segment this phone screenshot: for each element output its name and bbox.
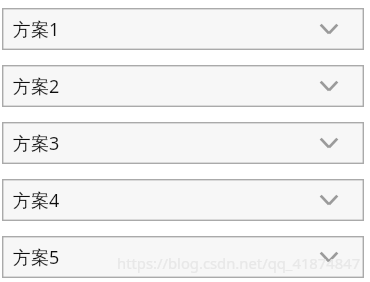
- button[interactable]: 方案4: [2, 179, 364, 221]
- staticText: 方案1: [13, 17, 60, 42]
- button[interactable]: 方案2: [2, 65, 364, 107]
- button[interactable]: 方案5: [2, 236, 364, 278]
- button[interactable]: Expand 方案3: [314, 128, 344, 158]
- staticText: 方案3: [13, 131, 60, 156]
- staticText: 方案2: [13, 74, 60, 99]
- button[interactable]: Expand 方案1: [314, 14, 344, 44]
- staticText: https://blog.csdn.net/qq_41874847: [117, 253, 361, 273]
- staticText: 方案5: [13, 245, 60, 270]
- staticText: 方案4: [13, 188, 60, 213]
- button[interactable]: Expand 方案4: [314, 185, 344, 215]
- button[interactable]: Expand 方案5: [314, 242, 344, 272]
- button[interactable]: 方案1: [2, 8, 364, 50]
- button[interactable]: Expand 方案2: [314, 71, 344, 101]
- button[interactable]: 方案3: [2, 122, 364, 164]
